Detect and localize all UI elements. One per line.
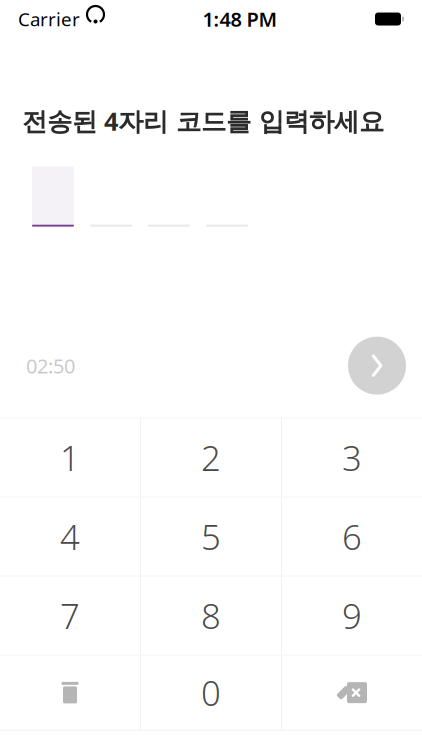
staticText: 6 — [342, 514, 362, 560]
button[interactable]: 1 — [0, 419, 140, 497]
staticText: 02:50 — [26, 352, 75, 379]
staticText: 1:48 PM — [202, 6, 277, 32]
button[interactable]: Clear — [0, 656, 140, 730]
staticText: 전송된 4자리 코드를 입력하세요 — [22, 104, 384, 138]
button[interactable]: 9 — [282, 577, 422, 655]
staticText: 2 — [201, 435, 221, 481]
button[interactable]: Next — [348, 337, 406, 395]
button[interactable]: 3 — [282, 419, 422, 497]
button[interactable]: 8 — [141, 577, 281, 655]
staticText: 9 — [342, 593, 362, 639]
button[interactable]: Delete — [282, 656, 422, 730]
staticText: Carrier — [18, 7, 80, 31]
button[interactable]: 6 — [282, 498, 422, 576]
staticText: 8 — [201, 593, 221, 639]
button[interactable]: 5 — [141, 498, 281, 576]
staticText: 5 — [201, 514, 221, 560]
staticText: 7 — [60, 593, 80, 639]
staticText: 4 — [60, 514, 80, 560]
staticText: 1 — [60, 435, 80, 481]
staticText: 3 — [342, 435, 362, 481]
button[interactable]: 7 — [0, 577, 140, 655]
button[interactable]: 2 — [141, 419, 281, 497]
button[interactable]: 4 — [0, 498, 140, 576]
staticText: 0 — [201, 670, 221, 716]
button[interactable]: 0 — [141, 656, 281, 730]
